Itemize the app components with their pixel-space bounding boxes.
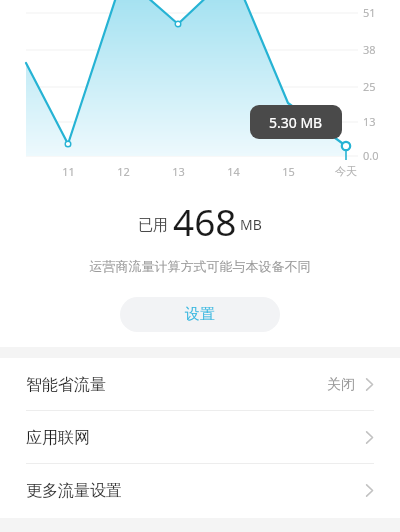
staticText: 5.30 MB [269,113,323,132]
staticText: 25 [363,79,376,94]
staticText: 今天 [335,164,357,178]
other: Open 应用联网 [365,430,374,445]
staticText: 13 [363,114,376,129]
staticText: 11 [62,164,75,179]
staticText: 设置 [185,305,215,324]
staticText: 15 [282,164,295,179]
button[interactable]: 应用联网 [0,411,400,464]
staticText: MB [240,215,262,234]
staticText: 更多流量设置 [26,481,122,501]
staticText: 已用 [138,216,168,235]
staticText: 12 [117,164,130,179]
staticText: 13 [172,164,185,179]
staticText: 关闭 [327,376,355,394]
staticText: 运营商流量计算方式可能与本设备不同 [0,258,400,274]
staticText: 应用联网 [26,428,90,448]
staticText: 51 [363,5,376,20]
button[interactable]: 更多流量设置 [0,464,400,517]
staticText: 38 [363,42,376,57]
staticText: 0.0 [363,148,379,163]
staticText: 智能省流量 [26,375,106,395]
staticText: 468 [173,196,237,240]
staticText: 14 [227,164,240,179]
button[interactable]: 设置 [120,297,280,332]
button[interactable]: 智能省流量 [0,358,400,411]
other: Open 更多流量设置 [365,483,374,498]
other: Open 智能省流量 [365,377,374,392]
